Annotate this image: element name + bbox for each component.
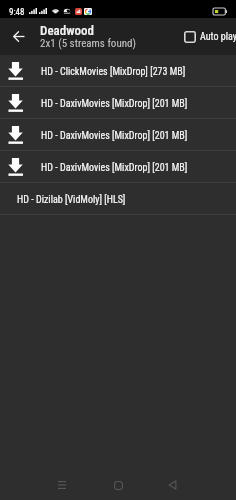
staticText: HD - ClickMovies [MixDrop] [273 MB] [41, 66, 186, 78]
staticText: HD - DaxivMovies [MixDrop] [201 MB] [41, 98, 188, 110]
staticText: Auto play [200, 31, 236, 43]
button[interactable]: Auto play [184, 18, 236, 55]
staticText: HD - DaxivMovies [MixDrop] [201 MB] [41, 162, 188, 174]
button[interactable]: Back [144, 466, 200, 500]
button[interactable]: HD - DaxivMovies [MixDrop] [201 MB] [0, 87, 236, 119]
button[interactable]: Recent apps [34, 466, 90, 500]
staticText: HD - DaxivMovies [MixDrop] [201 MB] [41, 130, 188, 142]
button[interactable]: HD - DaxivMovies [MixDrop] [201 MB] [0, 151, 236, 183]
button[interactable]: HD - DaxivMovies [MixDrop] [201 MB] [0, 119, 236, 151]
staticText: 2x1 (5 streams found) [40, 37, 137, 50]
button[interactable]: HD - Dizilab [VidMoly] [HLS] [0, 183, 236, 215]
staticText: HD - Dizilab [VidMoly] [HLS] [17, 194, 126, 206]
staticText: 9:48 [9, 7, 25, 18]
button[interactable]: Home [90, 466, 146, 500]
button[interactable]: Back [0, 18, 38, 55]
staticText: Deadwood [40, 23, 94, 38]
button[interactable]: HD - ClickMovies [MixDrop] [273 MB] [0, 55, 236, 87]
